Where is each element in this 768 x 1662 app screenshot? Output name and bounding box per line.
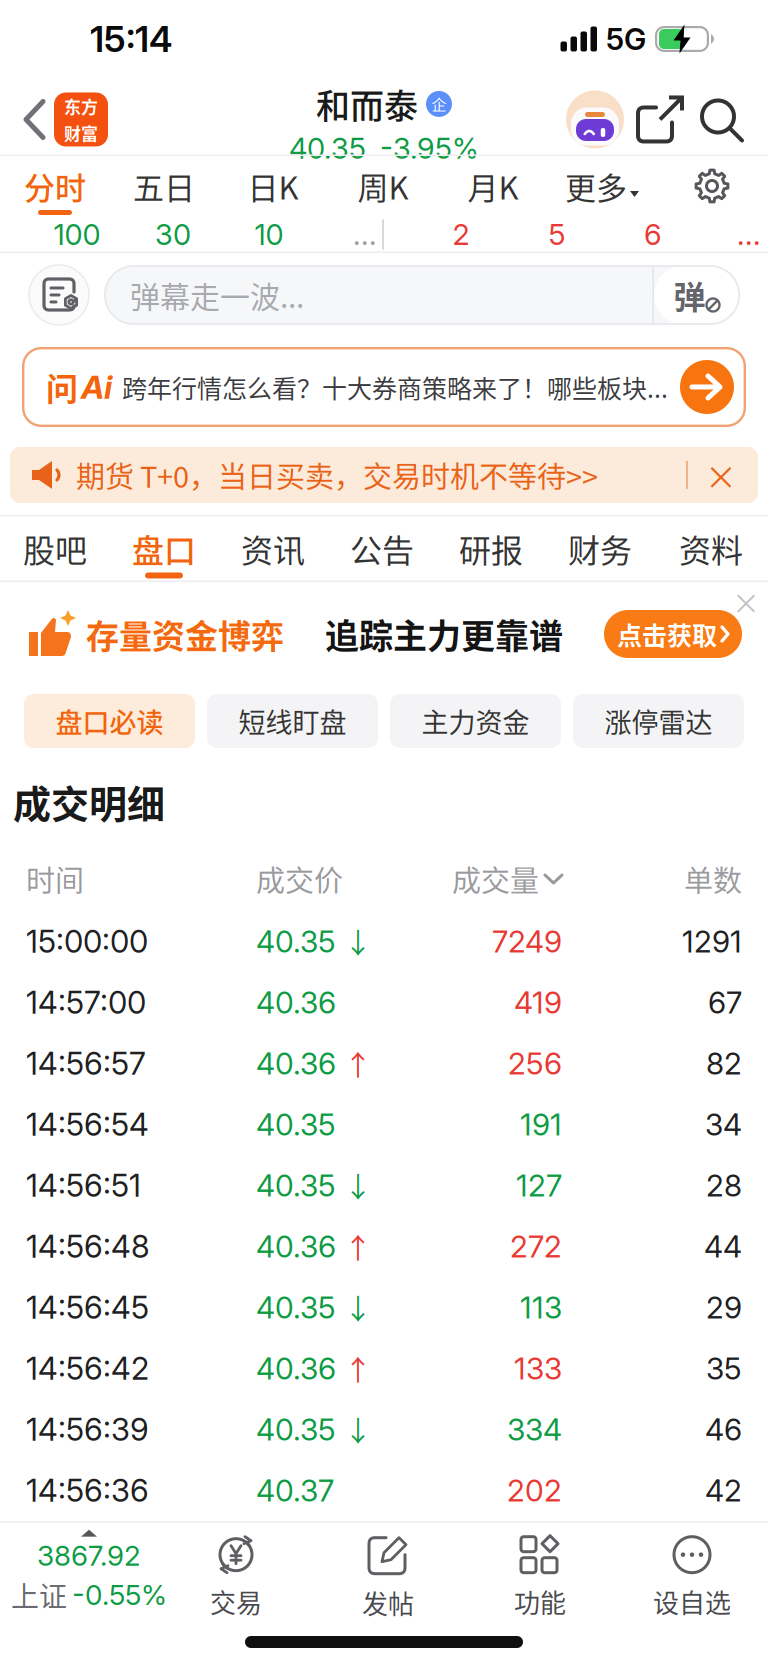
- button[interactable]: 6: [605, 216, 701, 253]
- staticText: 133: [514, 1350, 562, 1387]
- button[interactable]: 月K: [438, 156, 548, 216]
- button[interactable]: 设自选: [616, 1524, 768, 1620]
- staticText: 点击获取: [617, 616, 717, 652]
- button[interactable]: 交易: [160, 1524, 312, 1620]
- button[interactable]: 发帖: [312, 1524, 464, 1621]
- staticText: 资讯: [241, 525, 305, 572]
- staticText: ↑: [344, 1043, 372, 1084]
- button[interactable]: 五日: [110, 156, 218, 216]
- staticText: Ai: [81, 368, 112, 406]
- staticText: 东方: [64, 94, 98, 118]
- staticText: ↑: [344, 1348, 372, 1389]
- button[interactable]: 短线盯盘: [207, 694, 378, 748]
- button[interactable]: 更多档位: [317, 216, 413, 253]
- button[interactable]: 资料: [654, 516, 768, 580]
- button[interactable]: 关闭: [732, 582, 768, 622]
- button[interactable]: 弹幕输入框: [90, 265, 768, 325]
- staticText: 上证: [11, 1575, 67, 1615]
- staticText: ×: [732, 582, 760, 622]
- button[interactable]: 更多: [548, 156, 656, 216]
- button[interactable]: 30: [125, 216, 221, 253]
- button[interactable]: 搜索: [684, 96, 768, 142]
- staticText: 资料: [679, 525, 743, 572]
- button[interactable]: 分时: [0, 156, 110, 216]
- staticText: 14:56:57: [26, 1045, 146, 1082]
- staticText: 40.35: [256, 1411, 336, 1448]
- button[interactable]: 更多笔数: [701, 216, 768, 253]
- button[interactable]: 盘口必读: [24, 694, 195, 748]
- staticText: 35: [706, 1350, 742, 1387]
- button[interactable]: 公告: [328, 516, 436, 580]
- button[interactable]: 分享: [624, 95, 684, 143]
- button[interactable]: 按成交量排序: [386, 858, 562, 900]
- staticText: 成交明细: [13, 774, 165, 829]
- staticText: 时间: [26, 858, 84, 900]
- button[interactable]: 涨停雷达: [573, 694, 744, 748]
- staticText: 15:14: [90, 17, 172, 61]
- staticText: 功能: [514, 1583, 566, 1620]
- staticText: ↑: [344, 1226, 372, 1267]
- button[interactable]: 日K: [218, 156, 328, 216]
- button[interactable]: 设置: [656, 156, 768, 216]
- staticText: -0.55%: [72, 1578, 167, 1612]
- button[interactable]: 100: [29, 216, 125, 253]
- button[interactable]: 5: [509, 216, 605, 253]
- button[interactable]: 资讯: [218, 516, 328, 580]
- button[interactable]: 财务: [546, 516, 654, 580]
- button[interactable]: 股吧: [0, 516, 110, 580]
- staticText: 问: [46, 364, 78, 410]
- staticText: 14:56:45: [26, 1289, 149, 1326]
- button[interactable]: 点击获取: [604, 610, 768, 658]
- staticText: 191: [520, 1106, 562, 1143]
- button[interactable]: 问财助手: [566, 90, 624, 148]
- button[interactable]: 存量资金博弈: [0, 610, 284, 658]
- staticText: ↓: [344, 921, 372, 962]
- staticText: 研报: [459, 525, 523, 572]
- button[interactable]: 10: [221, 216, 317, 253]
- staticText: 10: [254, 217, 283, 252]
- staticText: 更多: [565, 163, 627, 208]
- staticText: 14:56:39: [26, 1411, 149, 1448]
- staticText: 弹: [673, 272, 705, 318]
- staticText: 成交价: [256, 858, 343, 900]
- staticText: 日K: [247, 163, 298, 208]
- button[interactable]: 研报: [436, 516, 546, 580]
- staticText: ×: [705, 452, 737, 498]
- staticText: ...: [353, 217, 377, 252]
- button[interactable]: 问Ai: [22, 347, 746, 427]
- button[interactable]: 周K: [328, 156, 438, 216]
- staticText: 202: [507, 1472, 562, 1509]
- staticText: 29: [706, 1289, 742, 1326]
- staticText: 113: [520, 1289, 562, 1326]
- button[interactable]: 东方财富: [47, 92, 108, 146]
- staticText: 28: [706, 1167, 742, 1204]
- button[interactable]: 盘口: [110, 516, 218, 580]
- staticText: ...: [737, 217, 761, 252]
- staticText: 40.36: [256, 1350, 336, 1387]
- staticText: 存量资金博弈: [86, 610, 284, 658]
- staticText: 财富: [64, 120, 98, 145]
- staticText: 7249: [492, 923, 562, 960]
- staticText: ↓: [344, 1165, 372, 1206]
- button[interactable]: 功能: [464, 1524, 616, 1620]
- staticText: 跨年行情怎么看？十大券商策略来了！哪些板块...: [122, 369, 668, 405]
- button[interactable]: 上证指数: [0, 1524, 160, 1615]
- staticText: 弹幕走一波...: [130, 273, 304, 317]
- button[interactable]: 返回: [0, 98, 47, 140]
- staticText: 30: [155, 217, 191, 252]
- button[interactable]: 弹幕设置: [0, 264, 90, 326]
- button[interactable]: 2: [413, 216, 509, 253]
- staticText: 14:56:42: [26, 1350, 149, 1387]
- button[interactable]: 期货广告: [10, 447, 758, 503]
- staticText: 股吧: [23, 525, 87, 572]
- staticText: 419: [514, 984, 562, 1021]
- staticText: 设自选: [653, 1583, 731, 1620]
- staticText: 五日: [133, 163, 195, 208]
- staticText: 企: [431, 93, 446, 115]
- staticText: 334: [507, 1411, 562, 1448]
- staticText: 14:56:54: [26, 1106, 149, 1143]
- staticText: 追踪主力更靠谱: [325, 609, 563, 659]
- staticText: 40.36: [256, 1228, 336, 1265]
- button[interactable]: 主力资金: [390, 694, 561, 748]
- staticText: 主力资金: [421, 701, 529, 740]
